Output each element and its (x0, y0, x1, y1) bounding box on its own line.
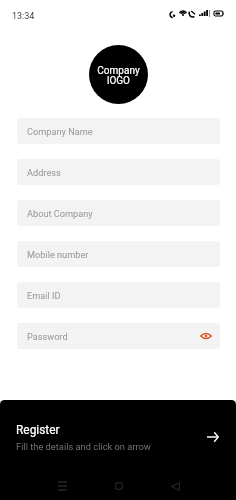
button[interactable]: Home (110, 477, 128, 495)
staticText: Password (27, 331, 68, 342)
staticText: Company Name (27, 126, 93, 137)
button[interactable]: Company Name (17, 118, 220, 144)
button[interactable]: Company lOGO (89, 45, 148, 104)
staticText: Mobile number (27, 249, 89, 260)
button[interactable]: About Company (17, 200, 220, 226)
staticText: Fill the details and click on arrow (16, 441, 151, 452)
staticText: Company lOGO (97, 65, 140, 87)
button[interactable]: Back (166, 477, 184, 495)
staticText: Email ID (27, 290, 61, 301)
button[interactable]: Submit (204, 428, 222, 446)
staticText: About Company (27, 208, 93, 219)
button[interactable]: Show password (199, 329, 213, 343)
button[interactable]: Password (17, 323, 220, 349)
button[interactable]: Address (17, 159, 220, 185)
button[interactable]: Email ID (17, 282, 220, 308)
staticText: Register (16, 422, 60, 437)
button[interactable]: Recent apps (53, 477, 71, 495)
button[interactable]: Register (0, 400, 236, 466)
button[interactable]: Mobile number (17, 241, 220, 267)
staticText: 13:34 (12, 11, 35, 22)
staticText: Address (27, 167, 61, 178)
